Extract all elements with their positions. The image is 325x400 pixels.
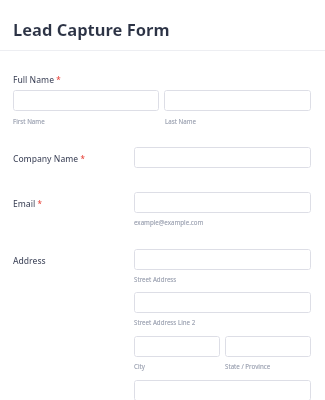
staticText: Last Name xyxy=(165,117,196,125)
staticText: City xyxy=(134,362,145,370)
staticText: Street Address Line 2 xyxy=(134,318,196,326)
staticText: Address xyxy=(13,255,46,267)
button[interactable]: Email xyxy=(134,192,311,213)
button[interactable]: Postal / Zip Code xyxy=(134,380,311,400)
staticText: Lead Capture Form xyxy=(13,18,170,40)
button[interactable]: City xyxy=(134,336,220,357)
staticText: Street Address xyxy=(134,275,177,283)
staticText: Full Name * xyxy=(13,74,61,86)
staticText: State / Province xyxy=(225,362,271,370)
staticText: Company Name * xyxy=(13,153,85,165)
button[interactable]: First Name xyxy=(13,90,159,111)
staticText: Email * xyxy=(13,198,42,210)
button[interactable]: Last Name xyxy=(164,90,311,111)
staticText: First Name xyxy=(13,117,45,125)
button[interactable]: State / Province xyxy=(225,336,311,357)
button[interactable]: Street Address Line 2 xyxy=(134,292,311,313)
staticText: example@example.com xyxy=(134,218,204,226)
button[interactable]: Company Name xyxy=(134,147,311,168)
button[interactable]: Street Address xyxy=(134,249,311,270)
